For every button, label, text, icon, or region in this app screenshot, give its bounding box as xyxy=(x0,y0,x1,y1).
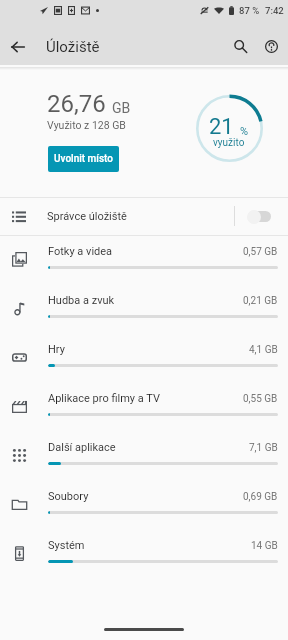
staticText: 4,1 GB xyxy=(249,344,278,356)
staticText: Využito z 128 GB xyxy=(47,119,126,131)
staticText: Aplikace pro filmy a TV xyxy=(48,392,160,405)
staticText: Hry xyxy=(48,343,65,356)
staticText: 21 xyxy=(209,114,234,140)
button[interactable]: Další aplikace xyxy=(0,432,288,481)
staticText: 7:42 xyxy=(265,5,284,16)
staticText: 26,76 xyxy=(47,90,106,118)
staticText: Systém xyxy=(48,539,85,552)
button[interactable]: Soubory xyxy=(0,481,288,530)
staticText: GB xyxy=(112,100,131,116)
button[interactable]: Uvolnit místo xyxy=(48,146,119,172)
staticText: 87 % xyxy=(239,5,260,16)
staticText: 0,69 GB xyxy=(243,491,278,503)
staticText: využito xyxy=(213,137,245,149)
staticText: Soubory xyxy=(48,490,89,503)
staticText: 0,55 GB xyxy=(243,393,278,405)
button[interactable]: Systém xyxy=(0,530,288,579)
button[interactable]: Správce úložiště xyxy=(0,198,288,235)
staticText: 14 GB xyxy=(251,540,278,552)
button[interactable]: Hudba a zvuk xyxy=(0,285,288,334)
staticText: 7,1 GB xyxy=(249,442,278,454)
button[interactable]: Fotky a videa xyxy=(0,236,288,285)
button[interactable]: Aplikace pro filmy a TV xyxy=(0,383,288,432)
staticText: 0,57 GB xyxy=(243,246,278,258)
staticText: Uvolnit místo xyxy=(54,153,113,165)
staticText: % xyxy=(240,125,249,138)
staticText: Hudba a zvuk xyxy=(48,294,115,307)
button[interactable]: Search xyxy=(222,28,258,64)
button[interactable]: Help xyxy=(253,28,288,64)
button[interactable]: Storage manager toggle xyxy=(247,209,271,224)
button[interactable]: Hry xyxy=(0,334,288,383)
staticText: Fotky a videa xyxy=(48,245,113,258)
staticText: 0,21 GB xyxy=(243,295,278,307)
staticText: Další aplikace xyxy=(48,441,116,454)
staticText: Úložiště xyxy=(46,38,100,56)
button[interactable]: Back xyxy=(0,29,36,65)
staticText: Správce úložiště xyxy=(47,210,127,223)
